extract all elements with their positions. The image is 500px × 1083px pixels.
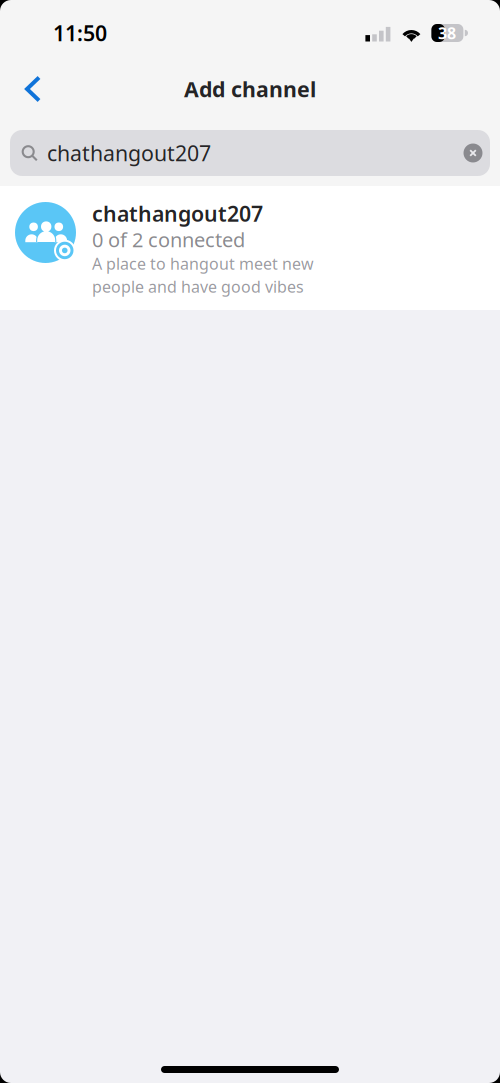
button[interactable]: Back (10, 66, 56, 112)
button[interactable]: chathangout207 (0, 186, 500, 310)
staticText: Add channel (184, 75, 316, 103)
staticText: chathangout207 (92, 199, 263, 228)
staticText: chathangout207 (47, 139, 211, 167)
button[interactable]: chathangout207 (10, 130, 490, 176)
staticText: 38 (438, 22, 456, 44)
staticText: 11:50 (53, 19, 107, 47)
staticText: 0 of 2 connected (92, 226, 245, 253)
staticText: people and have good vibes (92, 276, 304, 297)
staticText: A place to hangout meet new (92, 253, 314, 274)
